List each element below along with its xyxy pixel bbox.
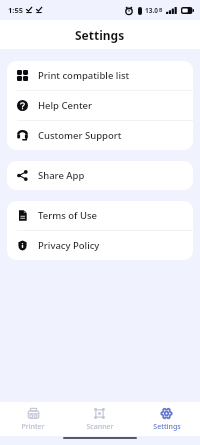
staticText: Share App [38,169,85,182]
button[interactable]: Print compatible list [7,61,193,90]
staticText: Privacy Policy [38,239,100,252]
button[interactable]: Customer Support [7,121,193,150]
button[interactable]: Settings [133,407,200,432]
staticText: Settings [153,422,181,432]
staticText: Printer [21,422,45,432]
staticText: Settings [75,27,125,43]
button[interactable]: Scanner [66,407,133,432]
staticText: Help Center [38,99,93,112]
staticText: 1:55 [8,5,23,15]
staticText: Print compatible list [38,69,130,82]
button[interactable]: Printer [0,407,66,432]
staticText: 13.0 [145,6,158,15]
staticText: Scanner [86,422,114,432]
staticText: Terms of Use [38,209,97,222]
button[interactable]: Privacy Policy [7,231,193,260]
button[interactable]: Help Center [7,91,193,120]
button[interactable]: Share App [7,161,193,190]
staticText: B [159,7,163,14]
button[interactable]: Terms of Use [7,201,193,230]
staticText: Customer Support [38,129,122,142]
